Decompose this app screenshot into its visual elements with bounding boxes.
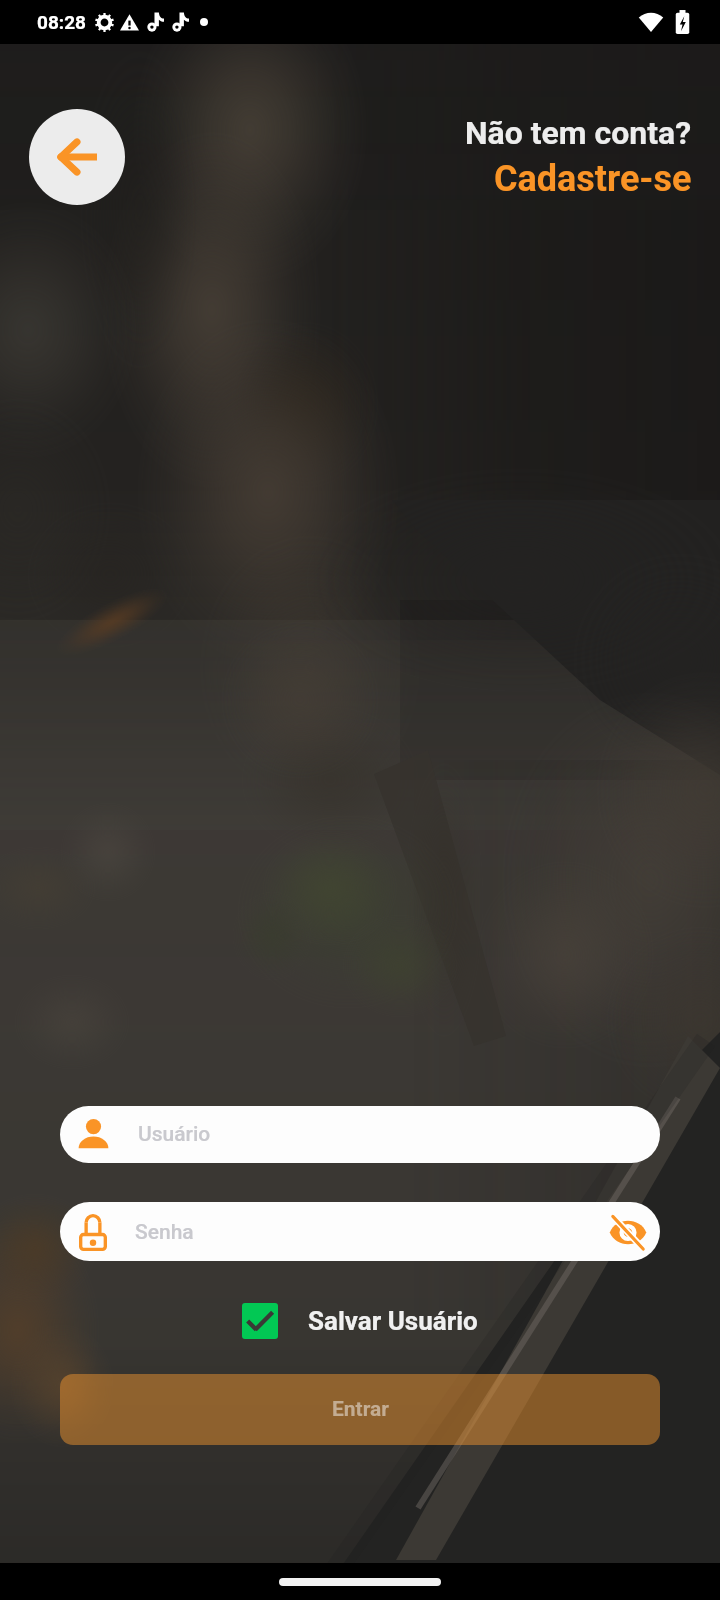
button[interactable]: Entrar: [60, 1374, 660, 1445]
staticText: Cadastre-se: [494, 158, 692, 200]
button[interactable]: Senha: [60, 1202, 660, 1261]
staticText: Usuário: [138, 1122, 211, 1147]
button[interactable]: Mostrar senha: [602, 1206, 654, 1258]
staticText: Salvar Usuário: [308, 1306, 478, 1336]
staticText: Não tem conta?: [465, 114, 692, 152]
staticText: 08:28: [37, 11, 86, 33]
staticText: Senha: [135, 1220, 194, 1245]
staticText: Entrar: [332, 1397, 389, 1422]
button[interactable]: Salvar Usuário: [242, 1303, 478, 1339]
button[interactable]: Usuário: [60, 1106, 660, 1163]
button[interactable]: Cadastre-se: [494, 158, 692, 200]
button[interactable]: Voltar: [29, 109, 125, 205]
